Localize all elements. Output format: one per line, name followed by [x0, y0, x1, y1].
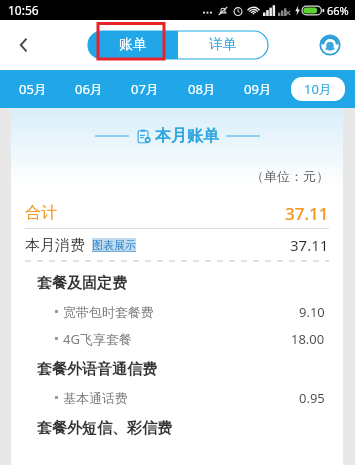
staticText: 套餐外语音通信费	[37, 360, 157, 379]
staticText: 4G飞享套餐	[63, 330, 132, 348]
button[interactable]: 账单	[88, 31, 178, 59]
button[interactable]: 05月	[10, 77, 56, 101]
button[interactable]: 合计	[11, 198, 343, 228]
button[interactable]: 套餐外短信、彩信费	[11, 414, 343, 443]
button[interactable]: 本月消费	[11, 229, 343, 261]
staticText: 套餐外短信、彩信费	[37, 419, 172, 438]
staticText: 9.10	[299, 303, 325, 321]
button[interactable]: Customer service	[305, 20, 355, 70]
staticText: 37.11	[285, 202, 329, 225]
button[interactable]: 09月	[235, 77, 281, 101]
staticText: 图表展示	[92, 238, 136, 252]
staticText: 18.00	[291, 330, 325, 348]
staticText: 07月	[131, 80, 159, 98]
staticText: 本月消费	[25, 236, 85, 255]
staticText: 0.95	[299, 389, 325, 407]
button[interactable]: 详单	[178, 31, 268, 59]
staticText: 本月账单	[155, 126, 219, 146]
staticText: 05月	[19, 80, 47, 98]
staticText: 08月	[188, 80, 216, 98]
button[interactable]: 宽带包时套餐费	[11, 298, 343, 325]
staticText: 合计	[25, 203, 57, 223]
button[interactable]: 4G飞享套餐	[11, 325, 343, 352]
button[interactable]: 06月	[66, 77, 112, 101]
button[interactable]: Back	[0, 20, 48, 70]
button[interactable]: 08月	[179, 77, 225, 101]
button[interactable]: 07月	[122, 77, 168, 101]
staticText: 06月	[75, 80, 103, 98]
staticText: 09月	[244, 80, 272, 98]
button[interactable]: 套餐外语音通信费	[11, 355, 343, 384]
button[interactable]: 基本通话费	[11, 384, 343, 411]
staticText: 10月	[304, 80, 332, 98]
button[interactable]: 10月	[291, 77, 345, 101]
staticText: 套餐及固定费	[37, 274, 127, 293]
button[interactable]: 图表展示	[92, 238, 136, 252]
staticText: 基本通话费	[63, 390, 128, 406]
staticText: 详单	[209, 36, 237, 54]
staticText: （单位：元）	[11, 168, 329, 184]
staticText: 37.11	[290, 235, 329, 255]
button[interactable]: 套餐及固定费	[11, 269, 343, 298]
staticText: 10:56	[8, 2, 39, 18]
staticText: 宽带包时套餐费	[63, 304, 154, 320]
staticText: 账单	[119, 36, 147, 54]
staticText: 66%	[327, 3, 349, 18]
